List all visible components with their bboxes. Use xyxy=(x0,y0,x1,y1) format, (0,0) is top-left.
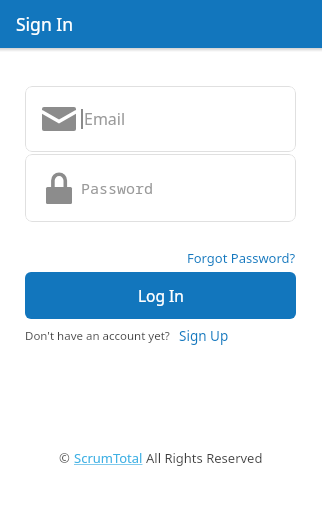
staticText: ScrumTotal xyxy=(74,449,146,467)
staticText: Sign In xyxy=(16,12,73,36)
staticText: Forgot Password? xyxy=(187,249,296,267)
button[interactable]: Forgot Password? xyxy=(187,249,296,267)
staticText: Don't have an account yet? xyxy=(25,328,170,344)
staticText: Email xyxy=(84,108,126,130)
button[interactable]: Log In xyxy=(25,272,296,319)
staticText: Password xyxy=(81,178,154,198)
staticText: All Rights Reserved xyxy=(146,449,263,467)
button[interactable]: Password xyxy=(25,154,296,222)
button[interactable]: Sign Up xyxy=(179,327,229,345)
staticText: Log In xyxy=(138,285,184,306)
staticText: © xyxy=(59,449,74,467)
button[interactable]: ScrumTotal xyxy=(74,449,146,467)
button[interactable]: Email xyxy=(25,86,296,152)
staticText: Sign Up xyxy=(179,327,229,345)
